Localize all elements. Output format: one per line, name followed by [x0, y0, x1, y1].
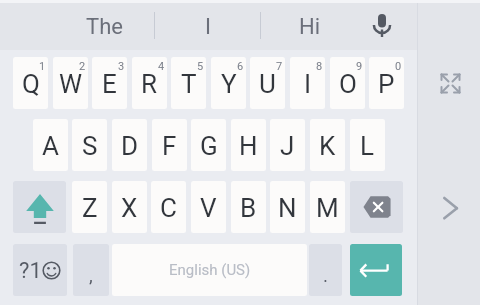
button[interactable]: I — [156, 3, 259, 50]
button[interactable]: X — [112, 181, 147, 233]
button[interactable]: Backspace — [350, 181, 403, 233]
staticText: 8 — [316, 60, 323, 73]
staticText: W — [59, 69, 83, 99]
button[interactable]: R — [132, 57, 167, 109]
staticText: V — [200, 193, 217, 223]
button[interactable]: The — [55, 3, 154, 50]
button[interactable]: H — [231, 119, 266, 171]
button[interactable]: A — [33, 119, 68, 171]
button[interactable]: M — [310, 181, 345, 233]
button[interactable]: Symbols and emoji — [13, 244, 67, 296]
staticText: ?1 — [19, 258, 42, 284]
staticText: 2 — [79, 60, 86, 73]
staticText: B — [240, 193, 257, 223]
button[interactable]: B — [231, 181, 266, 233]
staticText: D — [121, 131, 139, 161]
button[interactable]: D — [112, 119, 147, 171]
staticText: I — [205, 14, 211, 40]
button[interactable]: Expand keyboard — [434, 67, 466, 99]
staticText: O — [339, 69, 357, 99]
button[interactable]: G — [191, 119, 226, 171]
staticText: A — [42, 131, 59, 161]
button[interactable]: N — [270, 181, 305, 233]
staticText: . — [323, 264, 329, 286]
button[interactable]: Hi — [262, 3, 357, 50]
button[interactable]: O — [330, 57, 365, 109]
staticText: , — [89, 264, 93, 286]
button[interactable]: Z — [72, 181, 107, 233]
staticText: U — [259, 69, 276, 99]
staticText: 0 — [395, 60, 402, 73]
button[interactable]: Y — [211, 57, 246, 109]
staticText: Hi — [299, 14, 321, 40]
button[interactable]: Comma — [73, 244, 109, 296]
staticText: X — [121, 193, 138, 223]
staticText: 5 — [197, 60, 204, 73]
staticText: 4 — [158, 60, 165, 73]
button[interactable]: I — [290, 57, 325, 109]
button[interactable]: P — [369, 57, 404, 109]
button[interactable]: E — [92, 57, 127, 109]
staticText: T — [181, 69, 197, 99]
button[interactable]: K — [310, 119, 345, 171]
button[interactable]: English (US) — [112, 244, 307, 296]
button[interactable]: Period — [309, 244, 342, 296]
staticText: J — [280, 131, 295, 161]
staticText: P — [378, 69, 395, 99]
staticText: S — [82, 131, 98, 161]
staticText: E — [102, 69, 117, 99]
button[interactable]: Next — [433, 192, 465, 224]
button[interactable]: V — [191, 181, 226, 233]
staticText: M — [316, 193, 339, 223]
button[interactable]: U — [250, 57, 285, 109]
staticText: 9 — [356, 60, 363, 73]
staticText: Q — [22, 69, 40, 99]
staticText: English (US) — [169, 261, 251, 279]
staticText: G — [200, 131, 218, 161]
staticText: N — [278, 193, 297, 223]
button[interactable]: S — [72, 119, 107, 171]
staticText: The — [86, 14, 123, 40]
button[interactable]: Shift — [13, 181, 66, 233]
button[interactable]: W — [53, 57, 88, 109]
staticText: K — [319, 131, 336, 161]
button[interactable]: C — [151, 181, 186, 233]
staticText: F — [162, 131, 177, 161]
staticText: I — [304, 69, 312, 99]
button[interactable]: T — [171, 57, 206, 109]
staticText: L — [360, 131, 375, 161]
staticText: Y — [221, 69, 237, 99]
staticText: 6 — [237, 60, 244, 73]
button[interactable]: J — [270, 119, 305, 171]
staticText: 7 — [276, 60, 283, 73]
staticText: 1 — [39, 60, 46, 73]
staticText: R — [141, 69, 158, 99]
button[interactable]: Q — [13, 57, 48, 109]
button[interactable]: L — [350, 119, 385, 171]
staticText: C — [160, 193, 177, 223]
staticText: 3 — [118, 60, 125, 73]
staticText: Z — [82, 193, 98, 223]
button[interactable]: Enter — [350, 244, 402, 296]
staticText: H — [239, 131, 258, 161]
button[interactable]: Voice input — [360, 3, 404, 50]
button[interactable]: F — [152, 119, 187, 171]
